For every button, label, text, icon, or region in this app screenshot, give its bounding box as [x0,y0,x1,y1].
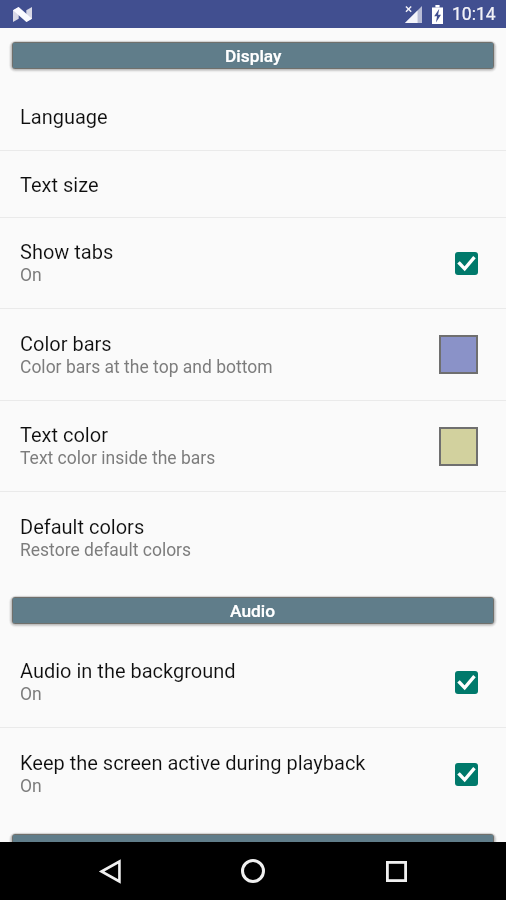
button[interactable]: Text size [0,151,506,217]
staticText: Audio in the background [20,659,236,682]
staticText: Text color [20,423,108,446]
button[interactable]: Language [0,82,506,150]
button[interactable]: Home [229,847,277,895]
staticText: Display [225,46,282,66]
staticText: On [20,265,42,286]
staticText: Color bars at the top and bottom [20,357,273,378]
staticText: Color bars [20,332,112,355]
button[interactable]: Keep the screen active during playback [0,728,506,820]
button[interactable]: Default colors [0,492,506,583]
button[interactable]: Audio [13,598,493,623]
staticText: Language [20,105,108,128]
button[interactable]: Audio in the background [0,637,506,727]
staticText: On [20,776,42,797]
staticText: Keep the screen active during playback [20,751,366,774]
staticText: Text size [20,173,99,196]
staticText: Default colors [20,515,145,538]
staticText: On [20,684,42,705]
staticText: Text color inside the bars [20,448,216,469]
staticText: Audio [230,601,276,621]
button[interactable]: Text color [0,401,506,491]
button[interactable]: Recents [372,847,420,895]
staticText: 10:14 [452,4,496,25]
staticText: Restore default colors [20,540,192,561]
button[interactable]: Show tabs [0,218,506,308]
button[interactable]: Color bars [0,309,506,400]
button[interactable]: Back [86,847,134,895]
button[interactable]: Display [13,43,493,68]
staticText: Show tabs [20,240,114,263]
